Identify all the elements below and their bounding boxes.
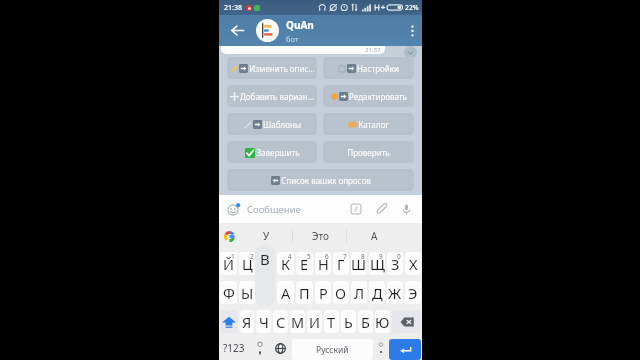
staticText: А [281,283,291,303]
button[interactable]: И [307,310,322,333]
button[interactable]: А [277,281,294,304]
staticText: 5 [307,252,311,261]
staticText: И [309,312,320,332]
button[interactable]: Enter [389,339,421,360]
button[interactable]: Period [374,336,388,360]
button[interactable]: Comma [249,336,270,360]
button[interactable]: ?123 [219,336,249,360]
staticText: Ж [388,283,402,303]
button[interactable]: А [347,223,401,249]
button[interactable]: Изменить опис… [227,57,317,79]
button[interactable]: Это [293,223,347,249]
staticText: Ф [223,283,235,303]
button[interactable]: Настройки [323,57,414,79]
button[interactable]: Х [405,252,421,275]
staticText: 9 [379,252,383,261]
staticText: QuAn [286,18,314,32]
staticText: З [391,254,400,274]
button[interactable]: Ь [341,310,356,333]
button[interactable]: Emoji [225,202,240,217]
staticText: Завершить [256,147,300,158]
button[interactable]: Ч [256,310,271,333]
staticText: Русский [316,344,349,356]
button[interactable]: Проверить [323,141,414,163]
button[interactable]: Р [315,281,331,304]
staticText: Ы [241,283,254,303]
button[interactable]: Е [296,252,313,275]
button[interactable]: О [333,281,349,304]
button[interactable]: Ф [220,281,237,304]
button[interactable]: Завершить [227,141,317,163]
button[interactable]: More options [402,15,422,46]
staticText: Й [223,254,234,274]
button[interactable]: Ю [375,310,390,333]
button[interactable]: Э [405,281,421,304]
staticText: 7 [343,252,347,261]
button[interactable]: Добавить вариан… [227,85,317,107]
button[interactable]: Каталог [323,113,414,135]
button[interactable]: Scroll to bottom [404,46,417,59]
staticText: 22% [405,3,419,12]
staticText: Я [242,312,252,332]
staticText: 21:37 [365,46,381,54]
button[interactable]: К [277,252,294,275]
staticText: П [299,283,310,303]
button[interactable] [258,252,275,275]
button[interactable]: Back [219,15,256,46]
button[interactable]: Google search [219,223,239,249]
button[interactable]: Список ваших опросов [227,169,414,191]
button[interactable]: Т [324,310,339,333]
button[interactable]: Д [369,281,385,304]
button[interactable]: Русский [292,339,373,360]
button[interactable]: Я [240,310,254,333]
staticText: М [291,312,305,332]
staticText: А [371,229,378,243]
staticText: У [263,229,270,243]
staticText: 0 [397,252,401,261]
staticText: 21:38 [224,3,242,13]
button[interactable]: У [239,223,293,249]
staticText: В [260,249,270,269]
staticText: 6 [325,252,329,261]
button[interactable]: Attach file [373,200,391,218]
staticText: Э [408,283,418,303]
button[interactable]: Shift [220,310,238,333]
button[interactable]: Й [220,252,237,275]
button[interactable]: Л [351,281,367,304]
button[interactable]: Редактировать [323,85,414,107]
staticText: Д [372,283,383,303]
button[interactable]: Шаблоны [227,113,317,135]
staticText: Добавить вариан… [240,91,314,102]
button[interactable]: Щ [369,252,385,275]
button[interactable]: Б [358,310,373,333]
button[interactable]: З [387,252,403,275]
button[interactable]: Backspace [392,310,421,333]
staticText: О [335,283,347,303]
button[interactable]: Record voice message [397,200,415,218]
button[interactable]: Change language [270,336,291,360]
button[interactable]: Ц [239,252,256,275]
button[interactable]: Г [333,252,349,275]
staticText: 1 [231,252,235,261]
staticText: Б [361,312,370,332]
button[interactable]: Н [315,252,331,275]
button[interactable]: Ш [351,252,367,275]
staticText: Н [318,254,329,274]
staticText: Ц [242,254,253,274]
button[interactable]: М [290,310,305,333]
staticText: Х [409,254,418,274]
staticText: Редактировать [349,91,407,102]
staticText: Список ваших опросов [281,175,371,186]
button[interactable]: Ы [239,281,256,304]
button[interactable]: С [273,310,288,333]
button[interactable]: Commands [347,200,365,218]
staticText: Щ [370,254,385,274]
button[interactable]: Profile picture [256,19,279,42]
staticText: Ч [259,312,269,332]
button[interactable]: Ж [387,281,403,304]
button[interactable]: П [296,281,313,304]
staticText: Сообщение [247,203,301,216]
staticText: 8 [361,252,365,261]
staticText: Е [300,254,309,274]
